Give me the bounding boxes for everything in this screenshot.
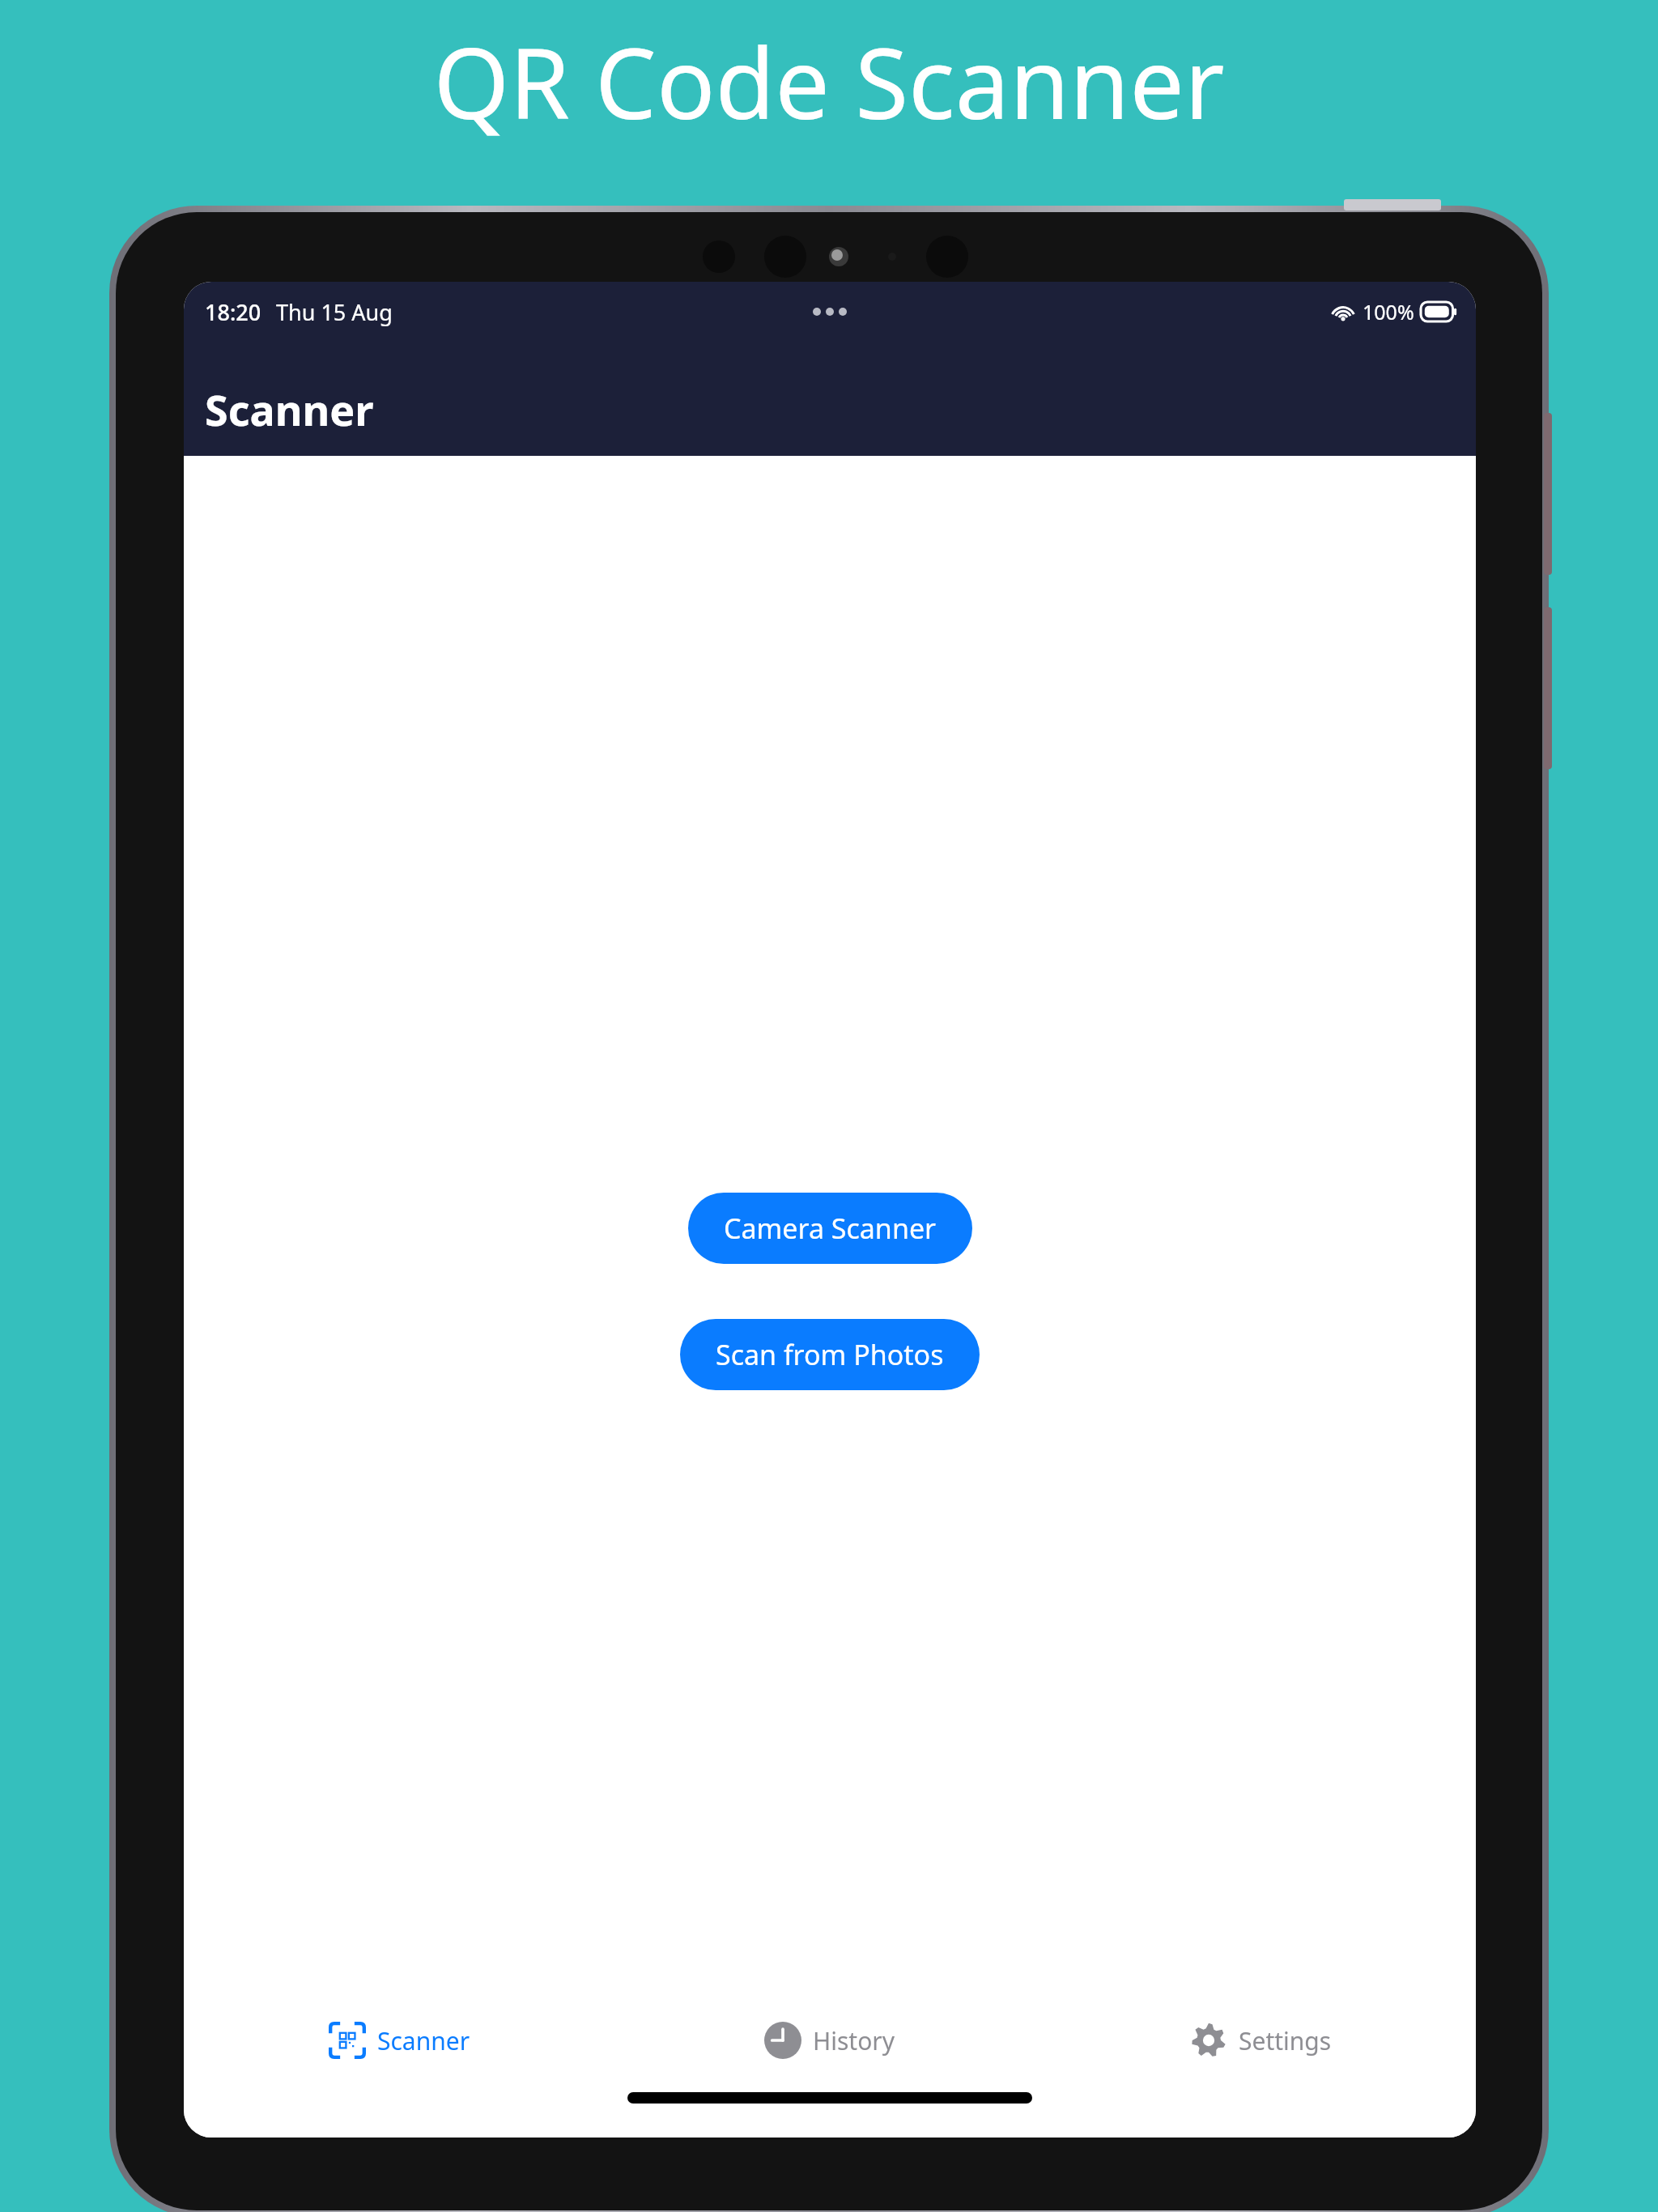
button[interactable]: Settings <box>1045 1995 1476 2086</box>
button[interactable]: History <box>614 1995 1045 2086</box>
other: History <box>764 2022 801 2059</box>
staticText: Camera Scanner <box>724 1210 937 1247</box>
staticText: Settings <box>1239 2024 1332 2057</box>
other: Settings <box>1190 2022 1227 2059</box>
staticText: Scanner <box>205 381 374 438</box>
staticText: 100% <box>1363 298 1414 325</box>
staticText: 18:20 <box>205 297 261 327</box>
button[interactable]: Scanner <box>184 1995 614 2086</box>
other: Scanner <box>329 2022 366 2059</box>
button[interactable]: Scan from Photos <box>680 1319 980 1390</box>
staticText: QR Code Scanner <box>433 15 1225 147</box>
staticText: Scan from Photos <box>716 1336 944 1373</box>
staticText: Thu 15 Aug <box>276 297 393 327</box>
staticText: History <box>813 2024 895 2057</box>
button[interactable]: Camera Scanner <box>688 1193 972 1264</box>
staticText: Scanner <box>377 2024 470 2057</box>
